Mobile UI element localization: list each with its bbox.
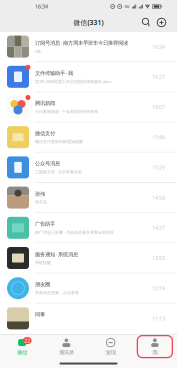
- staticText: [文件] 2024年度工作总结报告终稿版本.docx: [35, 79, 111, 84]
- button[interactable]: Search: [139, 13, 154, 32]
- button[interactable]: 公众号消息: [0, 153, 177, 183]
- staticText: 16:34: [35, 3, 48, 10]
- staticText: 14:58: [152, 194, 165, 201]
- staticText: 15:48: [152, 134, 165, 141]
- staticText: 有新动态更新，点击查看: [35, 290, 79, 295]
- staticText: 广告助手: [35, 221, 55, 227]
- button[interactable]: 我: [133, 335, 177, 359]
- staticText: 服务通知 · 系统消息: [35, 251, 78, 258]
- staticText: 腾讯新闻: [35, 100, 55, 106]
- button[interactable]: 朋友圈: [0, 274, 177, 304]
- staticText: 推广消息已折叠 · 点击此处展开查看全部内容: [35, 230, 114, 235]
- staticText: 微信支付收款到账通知提醒: [35, 139, 83, 144]
- button[interactable]: 订阅号消息 · 南方周末早班车今日推荐阅读: [0, 32, 177, 62]
- button[interactable]: Add: [154, 13, 169, 32]
- button[interactable]: 发现: [88, 335, 133, 359]
- button[interactable]: 文件传输助手 · 我: [0, 62, 177, 92]
- button[interactable]: 服务通知 · 系统消息: [0, 243, 177, 274]
- staticText: 明天见: [35, 200, 47, 204]
- staticText: 13:52: [152, 254, 165, 262]
- staticText: 14:37: [152, 224, 165, 231]
- staticText: 微信: [17, 349, 27, 356]
- staticText: 订阅号消息 · 南方周末早班车今日推荐阅读: [35, 39, 128, 46]
- staticText: 张伟: [35, 191, 45, 197]
- button[interactable]: 22: [0, 335, 44, 359]
- button[interactable]: 张伟: [0, 183, 177, 213]
- button[interactable]: 同事: [0, 304, 177, 334]
- staticText: 系统提醒: [35, 260, 51, 265]
- staticText: 通讯录: [59, 349, 74, 356]
- staticText: 我: [152, 349, 157, 356]
- staticText: 3条: [35, 49, 41, 54]
- staticText: 朋友圈: [35, 281, 50, 288]
- staticText: 今日要闻速递 · 十条新消息等待查阅: [35, 109, 98, 114]
- staticText: 15:29: [152, 164, 165, 171]
- staticText: 11:13: [152, 315, 165, 322]
- staticText: 16:34: [152, 43, 165, 50]
- staticText: 22: [24, 337, 30, 344]
- staticText: 12:19: [152, 285, 165, 292]
- staticText: 发现: [106, 349, 116, 356]
- staticText: 微信(331): [73, 18, 103, 27]
- button[interactable]: 腾讯新闻: [0, 92, 177, 123]
- staticText: 微信支付: [35, 130, 55, 137]
- staticText: 5G: [124, 4, 129, 9]
- button[interactable]: 微信支付: [0, 123, 177, 153]
- staticText: 公众号消息: [35, 160, 60, 167]
- staticText: 文件传输助手 · 我: [35, 69, 73, 76]
- staticText: 同事: [35, 311, 45, 318]
- staticText: 三篇新文章 · 点击查看全部: [35, 169, 82, 174]
- staticText: 16:07: [152, 103, 165, 111]
- button[interactable]: 通讯录: [44, 335, 88, 359]
- staticText: 16:27: [152, 73, 165, 80]
- button[interactable]: 广告助手: [0, 213, 177, 243]
